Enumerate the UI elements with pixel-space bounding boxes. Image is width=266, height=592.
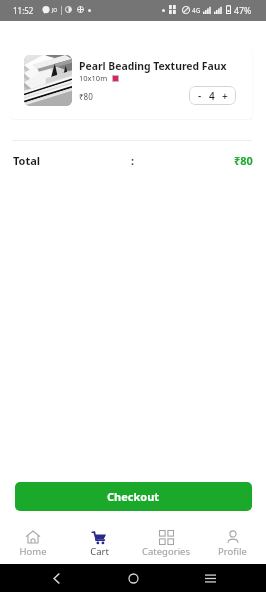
staticText: -: [198, 89, 202, 103]
staticText: Pearl Beading Textured Faux: [79, 59, 227, 73]
button[interactable]: Checkout: [15, 482, 252, 511]
button[interactable]: Recent apps: [199, 564, 221, 592]
staticText: 4: [209, 89, 215, 103]
staticText: Categories: [142, 545, 190, 558]
staticText: 11:52: [13, 5, 34, 16]
staticText: Cart: [90, 545, 109, 558]
staticText: JO: [52, 7, 58, 14]
staticText: Total: [13, 153, 41, 168]
staticText: 10x10m: [79, 73, 108, 83]
staticText: Checkout: [107, 489, 160, 504]
button[interactable]: Pearl Beading Textured Faux: [11, 47, 252, 119]
staticText: Home: [19, 545, 47, 558]
staticText: :: [131, 153, 135, 168]
staticText: 47%: [234, 5, 252, 17]
staticText: 4G: [192, 6, 201, 15]
button[interactable]: Home: [0, 519, 66, 564]
button[interactable]: Profile: [199, 519, 266, 564]
button[interactable]: -: [189, 86, 236, 105]
button[interactable]: Home: [122, 564, 144, 592]
staticText: +: [222, 89, 228, 103]
button[interactable]: Cart: [66, 519, 132, 564]
staticText: ₹80: [79, 91, 93, 102]
staticText: ₹80: [234, 153, 253, 168]
button[interactable]: Back: [45, 564, 67, 592]
button[interactable]: Categories: [132, 519, 199, 564]
staticText: Profile: [218, 545, 247, 558]
